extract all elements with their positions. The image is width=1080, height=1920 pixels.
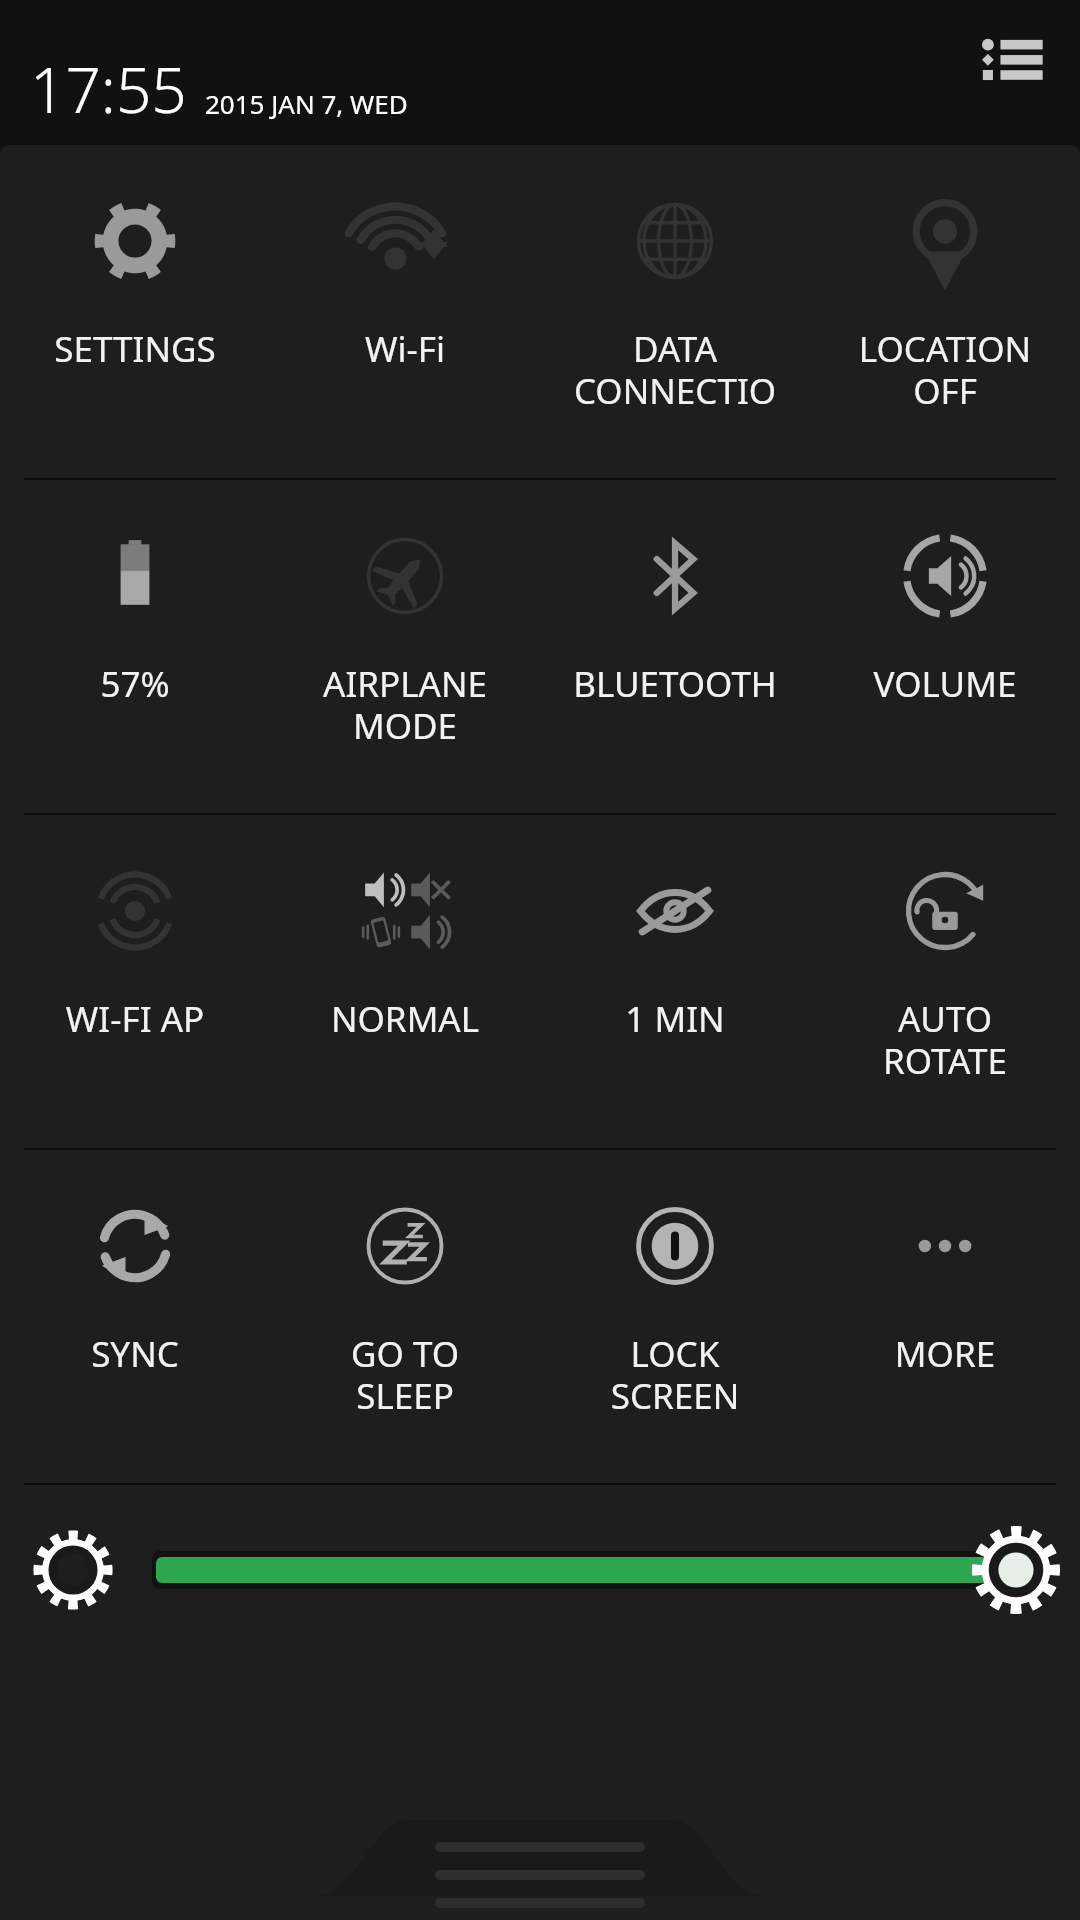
button[interactable]: NORMAL [270, 815, 540, 1148]
staticText: VOLUME [814, 660, 1076, 708]
staticText: BLUETOOTH [544, 660, 806, 708]
staticText: SETTINGS [4, 325, 266, 373]
button[interactable]: MORE [810, 1150, 1080, 1483]
staticText: AUTO ROTATE [814, 995, 1076, 1084]
button[interactable]: DATA CONNECTIO [540, 145, 810, 478]
staticText: NORMAL [274, 995, 536, 1043]
staticText: LOCK SCREEN [544, 1330, 806, 1419]
staticText: DATA CONNECTIO [544, 325, 806, 414]
staticText: Wi-Fi [274, 325, 536, 373]
button[interactable]: 57% [0, 480, 270, 813]
staticText: MORE [814, 1330, 1076, 1378]
button[interactable]: Wi-Fi [270, 145, 540, 478]
button[interactable]: LOCK SCREEN [540, 1150, 810, 1483]
staticText: 1 MIN [544, 995, 806, 1043]
button[interactable]: AUTO ROTATE [810, 815, 1080, 1148]
staticText: AIRPLANE MODE [274, 660, 536, 749]
staticText: 57% [4, 660, 266, 708]
button[interactable]: AIRPLANE MODE [270, 480, 540, 813]
button[interactable]: LOCATION OFF [810, 145, 1080, 478]
staticText: LOCATION OFF [814, 325, 1076, 414]
button[interactable]: BLUETOOTH [540, 480, 810, 813]
button[interactable]: SYNC [0, 1150, 270, 1483]
button[interactable]: 1 MIN [540, 815, 810, 1148]
button[interactable]: Notification list [978, 28, 1044, 94]
staticText: GO TO SLEEP [274, 1330, 536, 1419]
button[interactable]: VOLUME [810, 480, 1080, 813]
staticText: 2015 JAN 7, WED [205, 86, 408, 121]
button[interactable]: SETTINGS [0, 145, 270, 478]
button[interactable]: Brightness [0, 1485, 1080, 1655]
staticText: SYNC [4, 1330, 266, 1378]
other: Brightness [30, 1527, 116, 1613]
button[interactable]: Drag handle [0, 1810, 1080, 1896]
button[interactable]: WI-FI AP [0, 815, 270, 1148]
staticText: WI-FI AP [4, 995, 266, 1043]
staticText: 17:55 [30, 47, 187, 131]
button[interactable]: GO TO SLEEP [270, 1150, 540, 1483]
